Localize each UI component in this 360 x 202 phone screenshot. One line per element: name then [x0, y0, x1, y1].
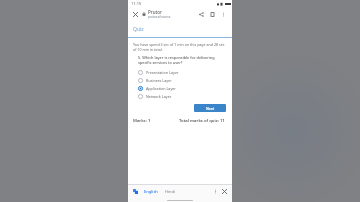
button[interactable]: Next [194, 104, 226, 112]
button[interactable]: Close [131, 10, 140, 19]
button[interactable]: Share [196, 9, 207, 20]
button[interactable]: Hindi [163, 187, 177, 196]
staticText: Prutor [148, 9, 162, 15]
staticText: prutor.ai/course [148, 15, 171, 19]
staticText: Next [206, 106, 215, 111]
staticText: Application Layer [146, 86, 176, 91]
staticText: Presentation Layer [146, 70, 179, 75]
staticText: Business Layer [146, 78, 172, 83]
button[interactable]: Business Layer [138, 76, 226, 84]
button[interactable]: Close translate bar [220, 187, 229, 196]
staticText: Total marks of quiz: 11 [179, 118, 225, 124]
button[interactable]: Network Layer [138, 92, 226, 100]
staticText: You have spend 3 sec of 1 min on this pa… [133, 42, 227, 52]
staticText: Network Layer [146, 94, 172, 99]
staticText: Quiz [133, 26, 144, 33]
staticText: Hindi [165, 189, 175, 194]
button[interactable]: Bookmark [207, 9, 218, 20]
staticText: Marks: 1 [133, 118, 151, 124]
button[interactable]: English [142, 187, 160, 196]
staticText: 11:15 [131, 1, 142, 6]
button[interactable]: More options [218, 9, 229, 20]
staticText: 5. Which layer is responsible for delive… [138, 55, 226, 65]
button[interactable]: Presentation Layer [138, 68, 226, 76]
button[interactable]: More options [211, 187, 220, 196]
staticText: English [144, 189, 158, 194]
button[interactable]: Translate [131, 187, 140, 196]
button[interactable]: Application Layer [138, 84, 226, 92]
